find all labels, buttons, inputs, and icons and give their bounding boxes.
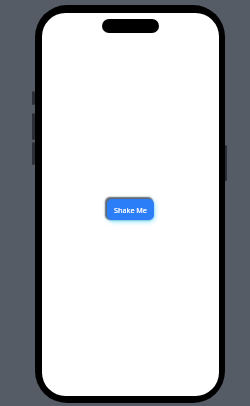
staticText: Shake Me [114,205,147,215]
button[interactable]: Shake Me [107,199,154,220]
